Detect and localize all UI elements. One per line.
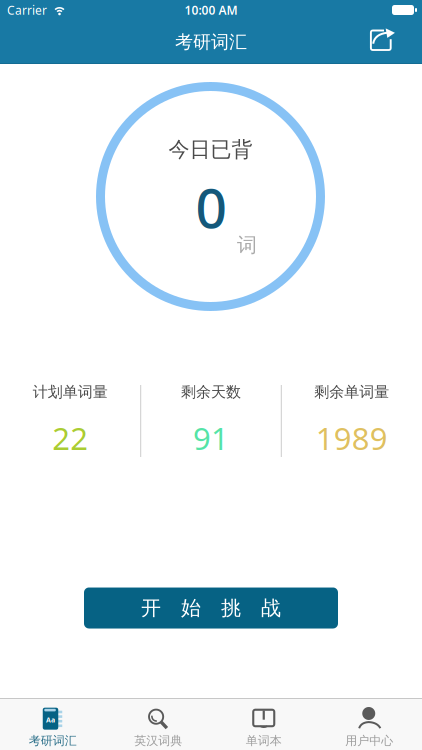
button[interactable]: 英汉词典 (105, 699, 211, 750)
staticText: Aa (46, 715, 55, 724)
staticText: 开 始 挑 战 (141, 596, 281, 620)
staticText: 0 (195, 170, 226, 243)
staticText: Carrier (7, 2, 47, 18)
staticText: 今日已背 (168, 137, 252, 162)
staticText: 剩余单词量 (314, 383, 389, 401)
staticText: 用户中心 (345, 733, 393, 748)
staticText: 91 (193, 417, 229, 459)
button[interactable]: 开 始 挑 战 (84, 587, 338, 628)
staticText: 剩余天数 (181, 383, 241, 401)
staticText: 词 (237, 233, 257, 257)
staticText: 考研词汇 (175, 31, 247, 53)
staticText: 22 (52, 417, 88, 459)
button[interactable]: 单词本 (211, 699, 316, 750)
button[interactable]: Share (362, 25, 422, 58)
button[interactable]: 用户中心 (316, 699, 422, 750)
staticText: 10:00 AM (184, 2, 237, 18)
staticText: 计划单词量 (33, 383, 108, 401)
button[interactable]: Aa (0, 699, 105, 750)
staticText: 单词本 (246, 733, 282, 748)
staticText: 考研词汇 (29, 733, 77, 748)
staticText: 1989 (316, 417, 388, 459)
staticText: 英汉词典 (134, 733, 182, 748)
